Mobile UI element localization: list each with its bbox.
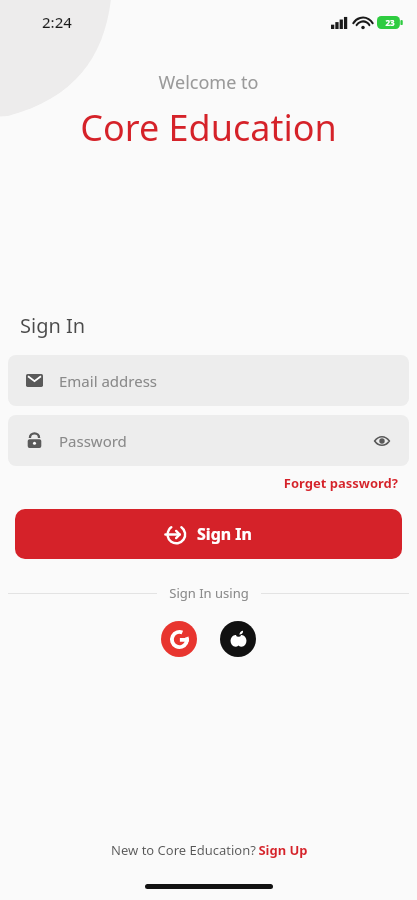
button[interactable]: Password bbox=[8, 415, 409, 466]
button[interactable]: Email address bbox=[8, 355, 409, 406]
button[interactable]: Show password bbox=[371, 430, 393, 452]
staticText: 23 bbox=[385, 17, 395, 28]
staticText: Sign In using bbox=[169, 584, 249, 602]
button[interactable]: Sign Up bbox=[258, 841, 308, 859]
staticText: Email address bbox=[59, 371, 393, 391]
button[interactable]: Forget password? bbox=[283, 474, 398, 492]
staticText: 2:24 bbox=[42, 12, 72, 32]
staticText: Password bbox=[59, 431, 371, 451]
button[interactable]: Sign in with Google bbox=[161, 621, 197, 657]
staticText: Sign In bbox=[197, 523, 252, 545]
staticText: Forget password? bbox=[283, 474, 398, 492]
staticText: Welcome to bbox=[0, 70, 417, 95]
staticText: Sign In bbox=[20, 312, 86, 339]
staticText: New to Core Education? bbox=[109, 841, 258, 859]
staticText: Sign Up bbox=[258, 841, 308, 859]
button[interactable]: Sign In bbox=[15, 509, 402, 559]
staticText: Core Education bbox=[0, 103, 417, 152]
button[interactable]: Sign in with Apple bbox=[220, 621, 256, 657]
